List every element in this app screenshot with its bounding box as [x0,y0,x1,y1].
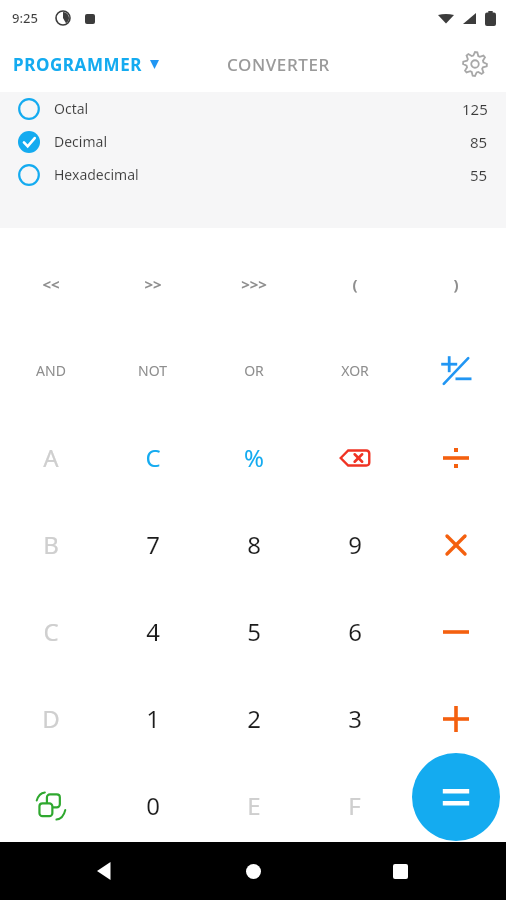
button[interactable]: ) [405,240,506,327]
button[interactable]: Operator [405,588,506,675]
button[interactable]: CONVERTER [227,53,330,76]
button[interactable]: Equals [412,753,500,841]
button[interactable]: Operator [405,501,506,588]
staticText: 125 [462,99,488,119]
staticText: F [348,789,361,822]
button[interactable]: F [304,762,405,849]
staticText: D [42,702,60,735]
staticText: 2 [247,702,261,735]
staticText: 0 [146,789,160,822]
button[interactable]: Swap [0,762,102,849]
button[interactable]: XOR [304,327,405,414]
staticText: C [43,615,59,648]
staticText: 7 [146,528,160,561]
button[interactable]: AND [0,327,102,414]
staticText: E [247,789,261,822]
button[interactable]: Backspace [304,414,405,501]
staticText: 4 [146,615,160,648]
button[interactable]: NOT [102,327,203,414]
staticText: ) [453,274,459,294]
button[interactable]: Toggle sign [405,327,506,414]
staticText: 9:25 [12,9,38,27]
staticText: 3 [348,702,362,735]
staticText: C [145,441,161,474]
staticText: B [43,528,59,561]
staticText: 8 [247,528,261,561]
button[interactable]: Settings [460,49,490,79]
button[interactable]: >> [102,240,203,327]
button[interactable]: Decimal [0,125,506,158]
staticText: >> [144,274,162,294]
button[interactable]: E [203,762,304,849]
staticText: 85 [470,132,488,152]
button[interactable]: >>> [203,240,304,327]
button[interactable]: Back [92,857,120,885]
staticText: NOT [138,361,167,380]
button[interactable]: 7 [102,501,203,588]
button[interactable]: C [0,588,102,675]
button[interactable]: PROGRAMMER [13,53,159,76]
button[interactable]: 3 [304,675,405,762]
button[interactable]: C [102,414,203,501]
button[interactable]: Octal [0,92,506,125]
staticText: Octal [54,99,89,118]
staticText: 55 [470,165,488,185]
button[interactable]: Home [239,857,267,885]
staticText: >>> [241,274,267,294]
staticText: % [244,441,264,474]
button[interactable]: Operator [405,675,506,762]
staticText: PROGRAMMER [13,53,143,76]
button[interactable]: ( [304,240,405,327]
staticText: OR [244,361,264,380]
button[interactable]: 0 [102,762,203,849]
button[interactable]: 6 [304,588,405,675]
staticText: ( [352,274,358,294]
staticText: Decimal [54,132,108,151]
button[interactable]: 4 [102,588,203,675]
button[interactable]: Hexadecimal [0,158,506,191]
button[interactable]: Recents [386,857,414,885]
button[interactable]: 8 [203,501,304,588]
staticText: AND [36,361,66,380]
staticText: XOR [341,361,369,380]
button[interactable]: 2 [203,675,304,762]
button[interactable]: 5 [203,588,304,675]
staticText: 1 [146,702,160,735]
button[interactable] [405,762,506,849]
button[interactable]: B [0,501,102,588]
staticText: 9 [348,528,362,561]
staticText: 5 [247,615,261,648]
staticText: Hexadecimal [54,165,139,184]
button[interactable]: OR [203,327,304,414]
button[interactable]: D [0,675,102,762]
button[interactable]: % [203,414,304,501]
staticText: << [42,274,60,294]
button[interactable]: 1 [102,675,203,762]
button[interactable]: A [0,414,102,501]
staticText: 6 [348,615,362,648]
staticText: A [43,441,59,474]
staticText: CONVERTER [227,53,330,76]
button[interactable]: 9 [304,501,405,588]
button[interactable]: << [0,240,102,327]
button[interactable]: Divide [405,414,506,501]
